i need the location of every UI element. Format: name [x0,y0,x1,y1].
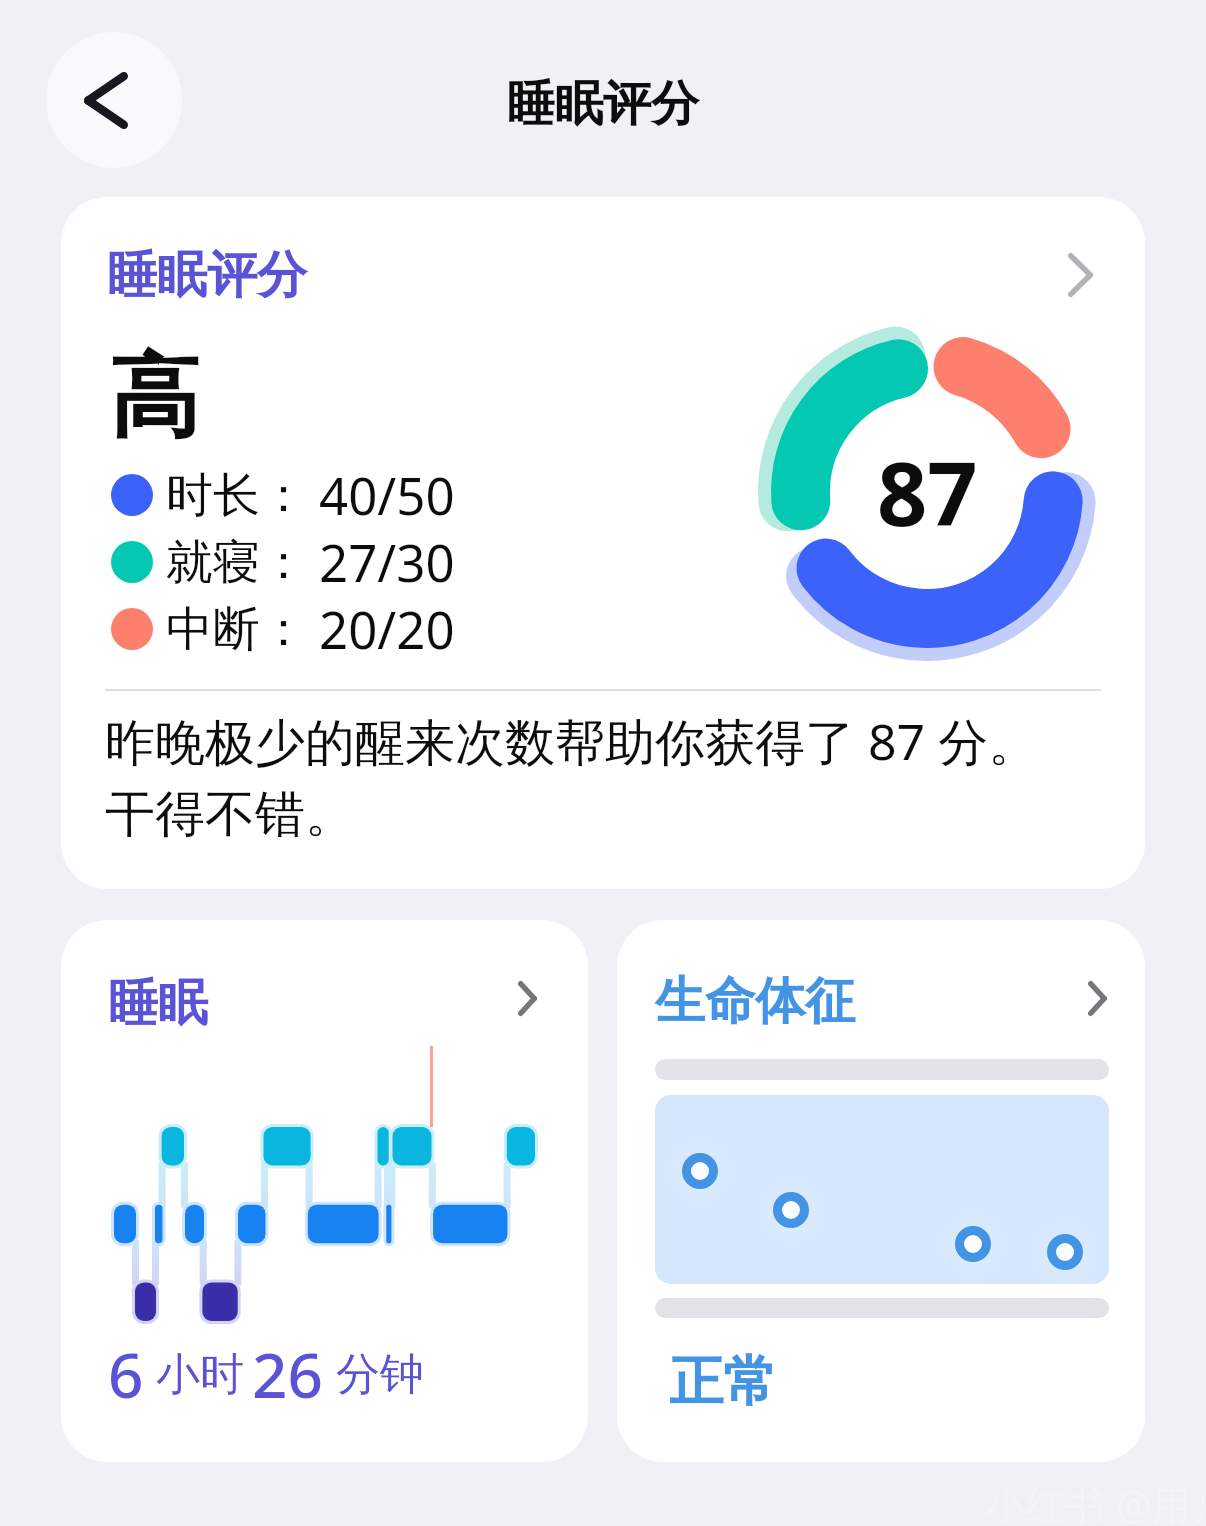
staticText: 小时 [156,1347,244,1402]
button[interactable]: 睡眠评分 [61,197,1145,889]
staticText: 40/50 [319,460,455,529]
button[interactable]: 生命体征 [617,920,1145,1462]
button[interactable]: Back [46,32,182,168]
staticText: 就寝： [166,533,307,592]
staticText: 睡眠 [108,972,208,1035]
staticText: 27/30 [319,527,455,596]
staticText: 生命体征 [655,970,855,1033]
staticText: 20/20 [319,594,455,663]
staticText: 分钟 [336,1347,424,1402]
staticText: 睡眠评分 [507,74,699,134]
staticText: 睡眠评分 [107,244,307,307]
staticText: 26 [252,1332,323,1416]
staticText: 高 [109,340,200,455]
staticText: 87 [877,432,978,552]
staticText: 中断： [166,600,307,659]
staticText: 正常 [669,1348,777,1416]
staticText: 时长： [166,466,307,525]
staticText: 6 [108,1332,144,1416]
button[interactable]: 睡眠 [61,920,588,1462]
staticText: 昨晚极少的醒来次数帮助你获得了 87 分。 干得不错。 [105,707,1105,846]
